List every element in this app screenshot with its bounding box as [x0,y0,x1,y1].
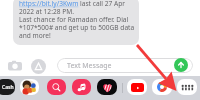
button[interactable]: More apps [177,79,197,95]
button[interactable]: Text Message [57,58,193,73]
button[interactable]: Google Maps [152,79,172,95]
button[interactable]: YouTube [127,79,147,95]
staticText: Cash [2,84,14,91]
staticText: https://bit.ly/3Kwm last call 27 Apr 202… [19,0,135,40]
button[interactable]: Camera [7,58,23,74]
button[interactable]: App Store [30,58,46,74]
staticText: Text Message [67,61,112,71]
button[interactable]: Digital Touch [97,79,117,95]
button[interactable]: Apple Cash [0,79,15,95]
button[interactable]: Send [174,58,188,72]
button[interactable]: Images [47,79,66,95]
button[interactable]: Music [72,79,91,95]
button[interactable]: Photos [20,79,39,95]
